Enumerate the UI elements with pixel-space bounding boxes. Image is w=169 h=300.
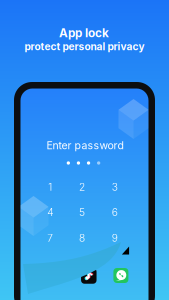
button[interactable]: 7 [37,227,63,249]
staticText: 8 [79,232,85,244]
button[interactable]: 1 [37,176,63,198]
button[interactable]: 6 [102,201,128,223]
button[interactable]: 3 [102,176,128,198]
staticText: 4 [47,206,53,219]
staticText: 3 [112,181,118,193]
staticText: 1 [48,181,52,193]
staticText: 5 [79,206,85,219]
staticText: 6 [112,206,118,219]
button[interactable]: 5 [69,201,95,223]
button[interactable]: 9 [102,227,128,249]
staticText: 9 [112,232,118,244]
staticText: App lock [59,26,109,40]
button[interactable]: 4 [37,201,63,223]
button[interactable]: WhatsApp [113,268,128,283]
staticText: protect personal privacy [24,40,144,53]
button[interactable]: 2 [69,176,95,198]
button[interactable]: TikTok [81,268,96,284]
button[interactable]: 8 [69,227,95,249]
staticText: Enter password [46,139,123,152]
staticText: 2 [79,181,85,193]
staticText: 7 [47,232,53,244]
